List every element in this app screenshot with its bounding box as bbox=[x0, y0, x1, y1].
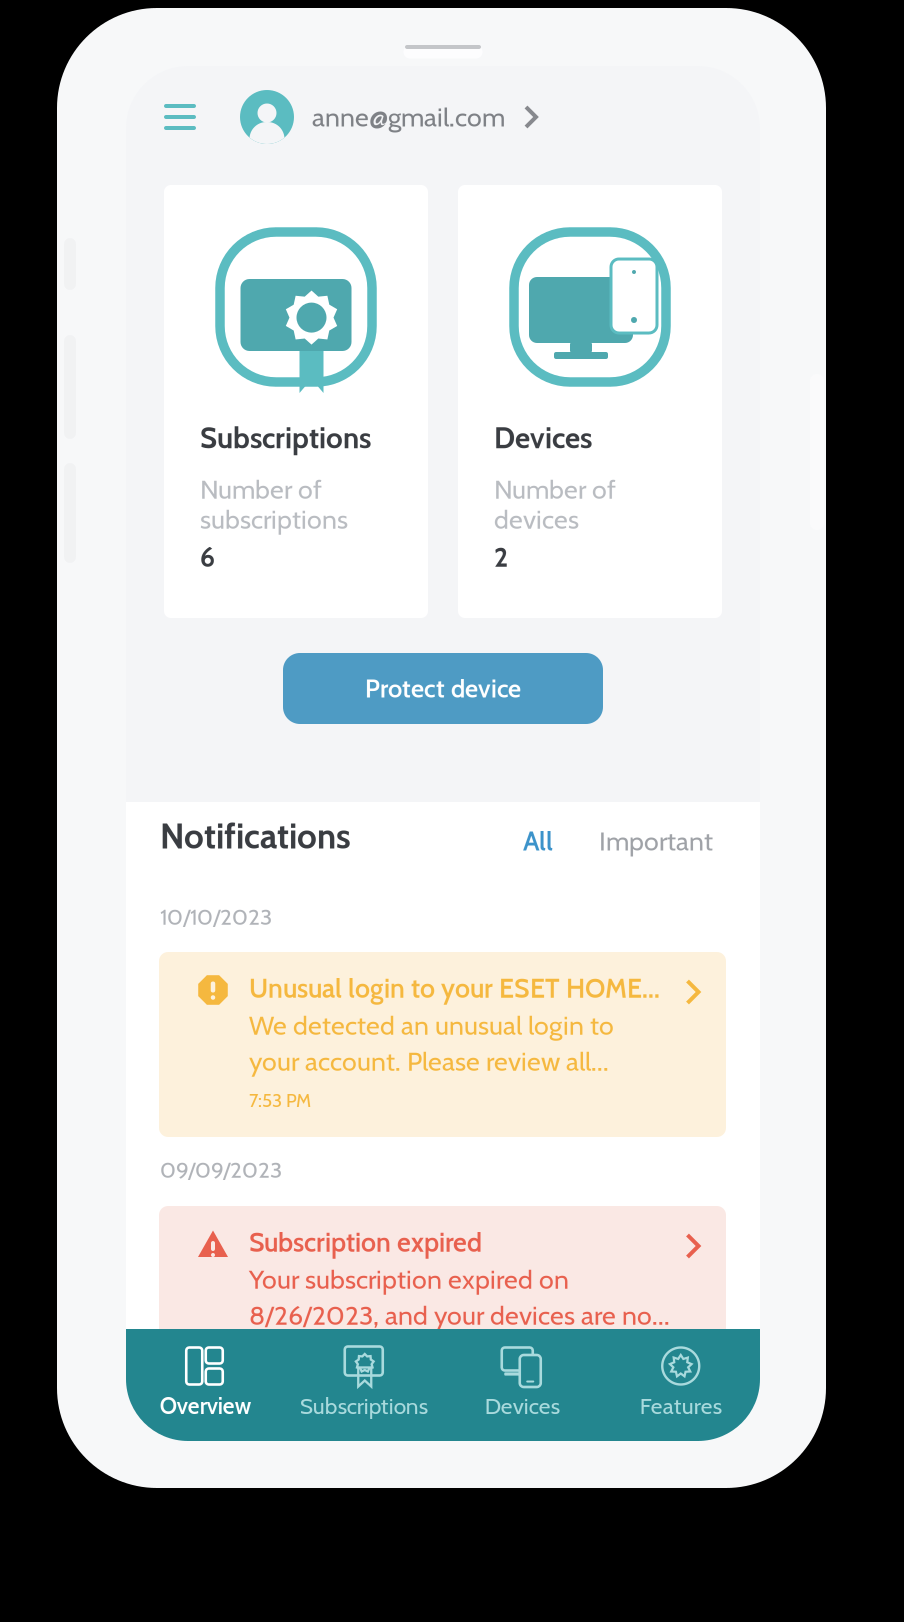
staticText: devices bbox=[494, 503, 579, 535]
staticText: Devices bbox=[485, 1392, 560, 1420]
staticText: Unusual login to your ESET HOME... bbox=[249, 972, 660, 1004]
button[interactable]: Subscriptions bbox=[284, 1329, 443, 1441]
staticText: Subscriptions bbox=[200, 420, 371, 456]
button[interactable]: All bbox=[506, 818, 570, 864]
staticText: We detected an unusual login to bbox=[249, 1009, 614, 1041]
staticText: Number of bbox=[494, 473, 616, 505]
staticText: 2 bbox=[494, 541, 508, 573]
button[interactable]: Overview bbox=[126, 1329, 284, 1441]
staticText: Protect device bbox=[365, 673, 521, 704]
staticText: 8/26/2023, and your devices are no... bbox=[249, 1299, 670, 1331]
button[interactable]: Devices bbox=[443, 1329, 601, 1441]
staticText: subscriptions bbox=[200, 503, 348, 535]
staticText: 09/09/2023 bbox=[160, 1156, 282, 1183]
staticText: Notifications bbox=[160, 815, 351, 857]
staticText: 7:53 PM bbox=[249, 1089, 311, 1112]
staticText: Subscription expired bbox=[249, 1226, 482, 1258]
staticText: Overview bbox=[160, 1392, 251, 1420]
button[interactable]: Unusual login to your ESET HOME... bbox=[159, 952, 726, 1137]
staticText: All bbox=[523, 825, 553, 857]
staticText: Number of bbox=[200, 473, 322, 505]
button[interactable]: Important bbox=[592, 818, 720, 864]
staticText: Features bbox=[640, 1392, 722, 1420]
button[interactable]: Protect device bbox=[283, 653, 603, 724]
staticText: 6 bbox=[200, 541, 215, 573]
button[interactable]: Subscription expired bbox=[159, 1206, 726, 1366]
staticText: Subscriptions bbox=[300, 1392, 428, 1420]
staticText: Devices bbox=[494, 420, 592, 456]
staticText: 10/10/2023 bbox=[160, 903, 272, 930]
staticText: your account. Please review all... bbox=[249, 1045, 609, 1077]
staticText: Important bbox=[599, 825, 713, 857]
staticText: anne@gmail.com bbox=[312, 101, 505, 133]
staticText: Your subscription expired on bbox=[249, 1263, 569, 1295]
button[interactable]: anne@gmail.com bbox=[240, 91, 600, 143]
button[interactable]: Menu bbox=[154, 91, 206, 143]
button[interactable]: Features bbox=[601, 1329, 760, 1441]
